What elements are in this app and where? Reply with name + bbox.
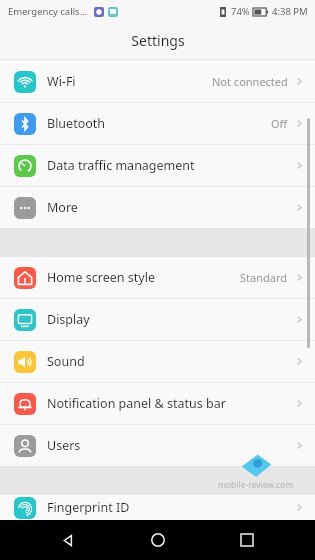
button[interactable]: Notification panel & status bar	[0, 383, 315, 424]
staticText: Notification panel & status bar	[47, 395, 294, 412]
staticText: Fingerprint ID	[47, 499, 294, 516]
button[interactable]: Sound	[0, 341, 315, 382]
staticText: Users	[47, 437, 294, 454]
button[interactable]: Home screen style	[0, 257, 315, 298]
button[interactable]: Users	[0, 425, 315, 466]
staticText: Settings	[131, 31, 185, 50]
button[interactable]: Wi-Fi	[0, 61, 315, 102]
staticText: Data traffic management	[47, 157, 294, 174]
button[interactable]: Back	[46, 520, 90, 560]
staticText: 4:38 PM	[272, 5, 308, 18]
staticText: mobile-review.com	[218, 479, 294, 491]
staticText: Off	[271, 116, 288, 131]
button[interactable]: Home	[136, 520, 180, 560]
button[interactable]: Data traffic management	[0, 145, 315, 186]
button[interactable]: More	[0, 187, 315, 228]
staticText: Wi-Fi	[47, 73, 212, 90]
button[interactable]: Bluetooth	[0, 103, 315, 144]
button[interactable]: Display	[0, 299, 315, 340]
staticText: Bluetooth	[47, 115, 271, 132]
staticText: Display	[47, 311, 294, 328]
staticText: Home screen style	[47, 269, 240, 286]
staticText: Standard	[240, 270, 288, 285]
staticText: 74%	[231, 5, 250, 18]
staticText: Sound	[47, 353, 294, 370]
staticText: Emergency calls…	[8, 5, 88, 18]
staticText: More	[47, 199, 294, 216]
button[interactable]: Fingerprint ID	[0, 495, 315, 520]
staticText: Not connected	[212, 74, 288, 89]
button[interactable]: Recent apps	[225, 520, 269, 560]
